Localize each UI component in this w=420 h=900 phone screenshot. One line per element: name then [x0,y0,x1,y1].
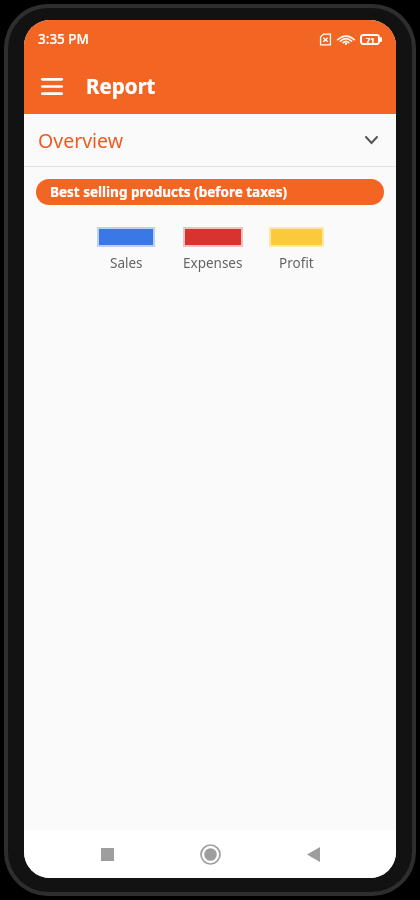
button[interactable]: Overview [24,114,396,166]
staticText: Best selling products (before taxes) [50,183,288,201]
staticText: 71 [366,35,375,45]
staticText: 3:35 PM [38,30,89,48]
button[interactable]: Best selling products (before taxes) [36,179,384,205]
button[interactable]: Home [188,832,232,876]
button[interactable]: Sales [97,227,155,272]
staticText: Expenses [183,254,243,272]
staticText: Overview [38,127,124,154]
button[interactable]: Recent apps [85,832,129,876]
button[interactable]: Profit [269,227,324,272]
staticText: Profit [279,254,314,272]
staticText: Report [86,72,156,100]
button[interactable]: Back [291,832,335,876]
staticText: Sales [110,254,143,272]
button[interactable]: Expenses [183,227,243,272]
button[interactable]: Open navigation menu [30,64,74,108]
